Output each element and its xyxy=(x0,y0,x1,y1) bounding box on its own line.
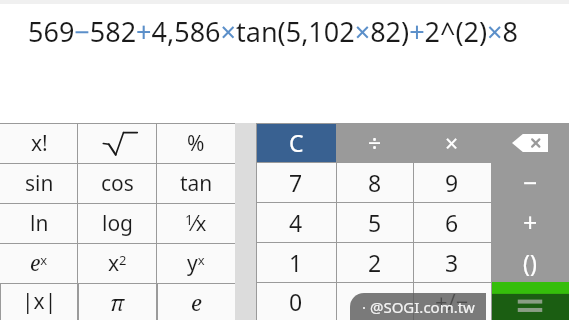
staticText: yx xyxy=(187,249,205,278)
staticText: 4 xyxy=(289,207,303,238)
button[interactable]: log xyxy=(78,203,157,243)
button[interactable]: +/− xyxy=(413,282,491,320)
staticText: π xyxy=(110,287,125,317)
staticText: 6 xyxy=(445,207,459,238)
button[interactable]: π xyxy=(78,283,157,320)
button[interactable]: 2 xyxy=(336,242,413,282)
staticText: tan xyxy=(180,169,213,198)
staticText: sin xyxy=(25,169,54,198)
staticText: x2 xyxy=(108,249,127,278)
staticText: ln xyxy=(30,209,49,238)
staticText: cos xyxy=(101,169,134,198)
staticText: e xyxy=(191,287,202,317)
staticText: 8 xyxy=(368,167,382,198)
staticText: · @SOGI.com.tw xyxy=(362,297,475,317)
button[interactable]: 6 xyxy=(413,202,491,242)
staticText: C xyxy=(289,127,304,158)
staticText: − xyxy=(523,165,538,199)
button[interactable]: 3 xyxy=(413,242,491,282)
button[interactable]: 5 xyxy=(336,202,413,242)
staticText: 1⁄x xyxy=(185,209,207,238)
button[interactable]: x2 xyxy=(78,243,157,283)
button[interactable]: Backspace xyxy=(491,123,569,162)
staticText: +/− xyxy=(435,286,469,316)
button[interactable]: tan xyxy=(157,163,235,203)
staticText: 569−582+4,586×tan(5,102×82)+2^(2)×8 xyxy=(28,13,518,50)
staticText: 2 xyxy=(368,247,382,278)
button[interactable]: ex xyxy=(0,243,78,283)
staticText: x! xyxy=(31,129,48,158)
staticText: 3 xyxy=(445,247,459,278)
staticText: × xyxy=(445,127,459,158)
button[interactable]: C xyxy=(256,123,336,162)
button[interactable]: × xyxy=(413,123,491,162)
button[interactable]: 9 xyxy=(413,162,491,202)
staticText: 9 xyxy=(445,167,459,198)
staticText: 0 xyxy=(289,286,303,317)
button[interactable]: yx xyxy=(157,243,235,283)
button[interactable] xyxy=(78,123,157,163)
staticText: 1 xyxy=(289,247,303,278)
staticText: % xyxy=(187,129,205,158)
button[interactable]: 4 xyxy=(256,202,336,242)
staticText: log xyxy=(102,209,134,238)
staticText: () xyxy=(523,247,537,278)
button[interactable]: ÷ xyxy=(336,123,413,162)
button[interactable]: Equals xyxy=(491,282,569,320)
button[interactable]: 1 xyxy=(256,242,336,282)
button[interactable]: 8 xyxy=(336,162,413,202)
button[interactable]: cos xyxy=(78,163,157,203)
button[interactable]: x! xyxy=(0,123,78,163)
button[interactable]: ln xyxy=(0,203,78,243)
button[interactable]: + xyxy=(491,202,569,242)
staticText: |x| xyxy=(22,287,57,316)
button[interactable]: 0 xyxy=(256,282,336,320)
button[interactable]: 7 xyxy=(256,162,336,202)
button[interactable]: e xyxy=(157,283,235,320)
button[interactable]: % xyxy=(157,123,235,163)
staticText: + xyxy=(523,205,538,239)
staticText: 7 xyxy=(289,167,303,198)
button[interactable]: 1⁄x xyxy=(157,203,235,243)
staticText: ÷ xyxy=(368,127,382,158)
button[interactable]: − xyxy=(491,162,569,202)
button[interactable] xyxy=(336,282,413,320)
staticText: 5 xyxy=(368,207,382,238)
staticText: ex xyxy=(30,249,48,278)
button[interactable]: () xyxy=(491,242,569,282)
button[interactable]: sin xyxy=(0,163,78,203)
button[interactable]: |x| xyxy=(0,283,78,320)
